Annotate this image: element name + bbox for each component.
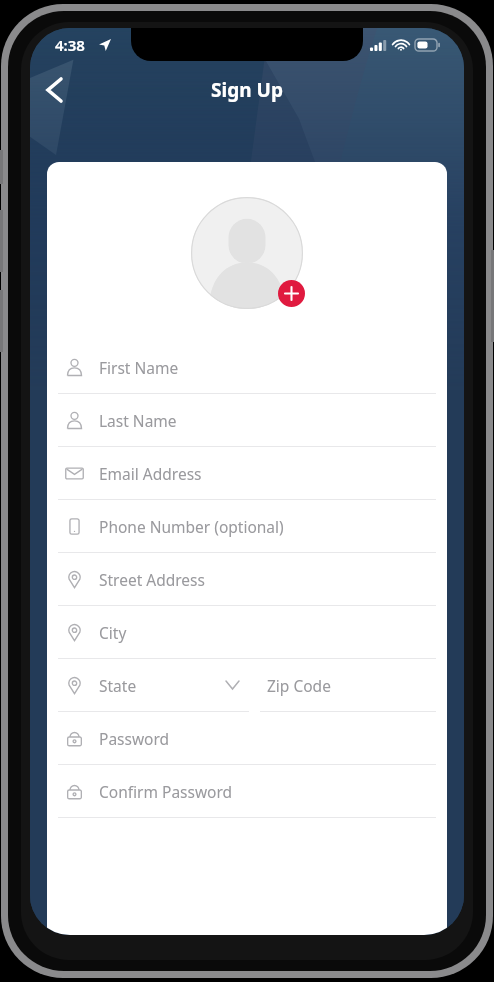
- staticText: Last Name: [99, 410, 177, 431]
- button[interactable]: First Name: [58, 341, 436, 394]
- staticText: Confirm Password: [99, 781, 233, 802]
- button[interactable]: Phone Number (optional): [58, 500, 436, 553]
- button[interactable]: Zip Code: [260, 659, 436, 712]
- staticText: Password: [99, 728, 170, 749]
- staticText: City: [99, 622, 127, 643]
- staticText: State: [99, 675, 226, 696]
- staticText: Street Address: [99, 569, 205, 590]
- staticText: Email Address: [99, 463, 202, 484]
- staticText: 4:38: [55, 35, 85, 55]
- button[interactable]: Email Address: [58, 447, 436, 500]
- staticText: Phone Number (optional): [99, 516, 284, 537]
- staticText: First Name: [99, 357, 179, 378]
- button[interactable]: Last Name: [58, 394, 436, 447]
- button[interactable]: Street Address: [58, 553, 436, 606]
- button[interactable]: Add profile photo: [191, 197, 303, 309]
- button[interactable]: Password: [58, 712, 436, 765]
- button[interactable]: City: [58, 606, 436, 659]
- staticText: Sign Up: [211, 77, 283, 103]
- button[interactable]: Back: [30, 66, 78, 114]
- button[interactable]: Confirm Password: [58, 765, 436, 818]
- button[interactable]: State: [58, 659, 249, 712]
- staticText: Zip Code: [267, 675, 331, 696]
